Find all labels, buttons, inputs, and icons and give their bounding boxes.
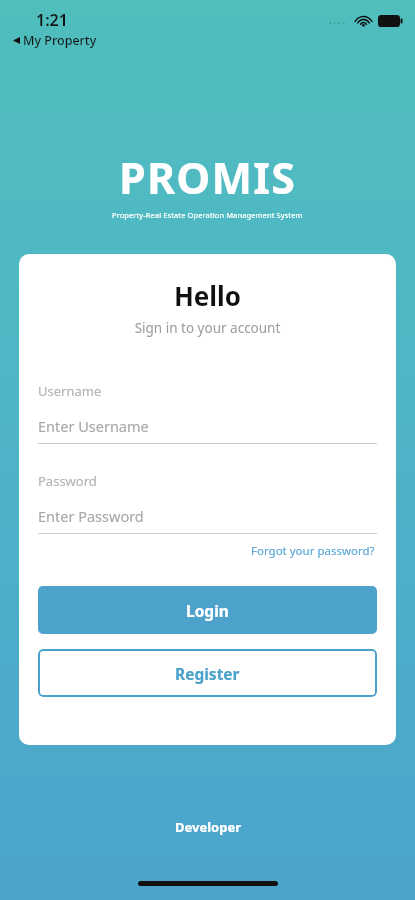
button[interactable]: Forgot your password? xyxy=(249,541,377,561)
staticText: 1:21 xyxy=(36,9,68,31)
staticText: Property-Real Estate Operation Managemen… xyxy=(112,210,303,220)
staticText: Username xyxy=(38,382,102,400)
button[interactable]: Enter Password xyxy=(38,506,377,534)
staticText: Sign in to your account xyxy=(19,319,396,337)
staticText: Hello xyxy=(19,278,396,313)
staticText: Register xyxy=(175,663,240,684)
button[interactable]: Enter Username xyxy=(38,416,377,444)
staticText: Login xyxy=(186,600,229,621)
button[interactable]: Developer xyxy=(167,815,249,839)
staticText: PROMIS xyxy=(119,148,297,207)
staticText: My Property xyxy=(23,32,97,49)
button[interactable]: My Property xyxy=(10,31,100,50)
staticText: Enter Password xyxy=(38,506,144,526)
staticText: Enter Username xyxy=(38,416,149,436)
button[interactable]: Register xyxy=(38,649,377,697)
staticText: Developer xyxy=(175,818,241,836)
staticText: Forgot your password? xyxy=(251,543,375,559)
button[interactable]: Login xyxy=(38,586,377,634)
staticText: Password xyxy=(38,472,97,490)
